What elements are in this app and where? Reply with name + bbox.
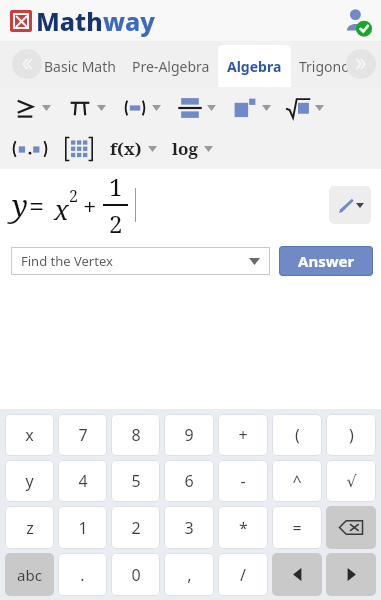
button[interactable]: 3 (164, 506, 214, 549)
staticText: = (29, 187, 45, 224)
button[interactable]: Pi (67, 95, 93, 121)
staticText: x (54, 191, 69, 228)
staticText: log (172, 137, 198, 160)
button[interactable]: 2 (111, 506, 160, 549)
staticText: 2 (109, 207, 123, 240)
staticText: 3 (184, 517, 194, 539)
button[interactable]: , (164, 553, 214, 596)
button[interactable]: log (170, 137, 200, 160)
button[interactable]: + (218, 414, 268, 456)
button[interactable]: More (200, 138, 216, 160)
button[interactable]: Coordinate pair (10, 136, 50, 162)
staticText: 6 (184, 470, 194, 492)
button[interactable]: More (203, 97, 219, 119)
button[interactable]: Trigonomet (291, 45, 381, 87)
staticText: ) (349, 424, 354, 446)
button[interactable]: z (5, 506, 54, 549)
button[interactable]: Exponent (232, 95, 258, 121)
button[interactable]: Parentheses (122, 95, 148, 121)
button[interactable]: Move cursor right (326, 553, 376, 596)
button[interactable]: ^ (272, 460, 322, 502)
staticText: Find the Vertex (21, 252, 113, 270)
button[interactable]: ( (272, 414, 322, 456)
button[interactable]: More (144, 138, 160, 160)
staticText: / (240, 564, 246, 586)
staticText: 0 (131, 564, 141, 586)
button[interactable]: 8 (111, 414, 160, 456)
staticText: 4 (78, 470, 88, 492)
staticText: ^ (292, 470, 302, 492)
staticText: abc (17, 565, 42, 585)
button[interactable]: 4 (58, 460, 107, 502)
button[interactable]: More (38, 97, 54, 119)
staticText: ( (295, 424, 300, 446)
staticText: √ (346, 472, 357, 491)
button[interactable]: Matrix (64, 136, 94, 162)
button[interactable]: Backspace (326, 506, 376, 549)
staticText: f(x) (110, 137, 142, 160)
staticText: Basic Math (44, 57, 116, 76)
button[interactable]: Answer (279, 246, 373, 276)
button[interactable]: ) (326, 414, 376, 456)
staticText: Pre-Algebra (132, 57, 210, 76)
button[interactable]: 1 (58, 506, 107, 549)
staticText: Trigonomet (299, 57, 373, 76)
staticText: 8 (131, 424, 141, 446)
staticText: - (240, 470, 246, 492)
button[interactable]: 6 (164, 460, 214, 502)
button[interactable]: * (218, 506, 268, 549)
button[interactable]: abc (5, 553, 54, 596)
button[interactable]: 9 (164, 414, 214, 456)
button[interactable]: y (5, 460, 54, 502)
button[interactable]: More (258, 97, 274, 119)
staticText: + (238, 424, 248, 446)
button[interactable]: f(x) (108, 137, 144, 160)
staticText: Algebra (227, 57, 282, 76)
staticText: 9 (184, 424, 194, 446)
button[interactable]: More (311, 97, 327, 119)
staticText: 1 (78, 517, 88, 539)
button[interactable]: / (218, 553, 268, 596)
button[interactable]: = (272, 506, 322, 549)
button[interactable]: x (5, 414, 54, 456)
button[interactable]: Scroll tabs left (12, 49, 42, 79)
staticText: , (187, 564, 192, 586)
staticText: 2 (69, 185, 78, 207)
button[interactable]: 0 (111, 553, 160, 596)
staticText: 7 (78, 424, 88, 446)
button[interactable]: Move cursor left (272, 553, 322, 596)
button[interactable]: Greater or equal (12, 95, 38, 121)
staticText: x (25, 424, 34, 446)
staticText: = (292, 517, 302, 539)
button[interactable]: More (148, 97, 164, 119)
button[interactable]: Edit input (329, 186, 371, 224)
button[interactable]: . (58, 553, 107, 596)
button[interactable]: 7 (58, 414, 107, 456)
staticText: . (80, 564, 85, 586)
button[interactable]: Pre-Algebra (124, 45, 218, 87)
button[interactable]: Account (341, 5, 373, 37)
button[interactable]: Scroll tabs right (346, 49, 376, 79)
staticText: 2 (131, 517, 141, 539)
staticText: y (12, 185, 28, 226)
button[interactable]: 5 (111, 460, 160, 502)
button[interactable]: More (93, 97, 109, 119)
staticText: Math (36, 4, 103, 38)
staticText: 5 (131, 470, 141, 492)
staticText: way (103, 4, 156, 38)
button[interactable]: Fraction (177, 95, 203, 121)
button[interactable]: Algebra (218, 45, 291, 87)
staticText: z (26, 517, 34, 539)
staticText: * (239, 517, 248, 539)
staticText: y (25, 470, 34, 492)
staticText: + (83, 189, 97, 222)
staticText: Answer (298, 251, 355, 271)
button[interactable]: Square root (285, 95, 311, 121)
button[interactable]: √ (326, 460, 376, 502)
button[interactable]: - (218, 460, 268, 502)
button[interactable]: Basic Math (36, 45, 124, 87)
staticText: 1 (109, 170, 123, 203)
button[interactable]: Find the Vertex (11, 247, 270, 275)
